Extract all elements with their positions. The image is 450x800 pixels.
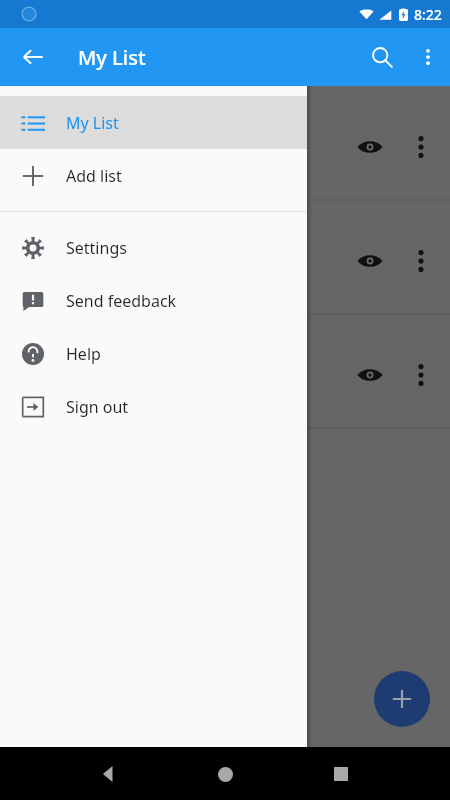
button[interactable]: Toggle visibility [355,246,385,276]
staticText: Send feedback [66,290,177,312]
button[interactable]: More options [406,35,450,79]
button[interactable]: Toggle visibility [355,132,385,162]
staticText: Sign out [66,396,129,418]
staticText: My List [78,44,146,71]
button[interactable]: Home [201,750,249,798]
button[interactable]: Sign out [0,380,307,433]
button[interactable]: More options [406,132,436,162]
staticText: My List [66,112,119,134]
button[interactable]: Back [9,33,57,81]
button[interactable]: Settings [0,221,307,274]
button[interactable]: Toggle visibility [355,360,385,390]
button[interactable]: Add list [0,149,307,202]
button[interactable]: Search [358,33,406,81]
button[interactable]: My List [0,96,307,149]
button[interactable]: Send feedback [0,274,307,327]
button[interactable]: Help [0,327,307,380]
button[interactable]: More options [406,360,436,390]
button[interactable]: Back [85,750,133,798]
staticText: 8:22 [414,5,442,24]
button[interactable]: More options [406,246,436,276]
staticText: Help [66,343,101,365]
staticText: Settings [66,237,127,259]
staticText: Add list [66,165,122,187]
button[interactable]: Recent apps [317,750,365,798]
button[interactable]: Add [374,671,430,727]
